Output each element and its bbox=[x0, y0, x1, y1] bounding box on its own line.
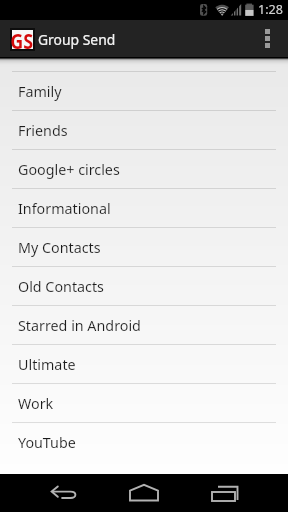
staticText: Informational bbox=[18, 199, 111, 218]
staticText: GS bbox=[10, 25, 34, 54]
button[interactable]: Google+ circles bbox=[0, 150, 288, 188]
staticText: Group Send bbox=[38, 30, 116, 49]
button[interactable]: YouTube bbox=[0, 423, 288, 461]
staticText: Starred in Android bbox=[18, 316, 141, 335]
button[interactable]: Friends bbox=[0, 111, 288, 149]
staticText: 1:28 bbox=[258, 1, 283, 18]
button[interactable]: More options bbox=[246, 20, 288, 57]
button[interactable]: My Contacts bbox=[0, 228, 288, 266]
staticText: Old Contacts bbox=[18, 277, 104, 296]
button[interactable]: Back bbox=[0, 474, 96, 512]
button[interactable]: Informational bbox=[0, 189, 288, 227]
staticText: Family bbox=[18, 82, 62, 101]
button[interactable]: Recent apps bbox=[192, 474, 288, 512]
staticText: My Contacts bbox=[18, 238, 101, 257]
button[interactable]: Work bbox=[0, 384, 288, 422]
staticText: Ultimate bbox=[18, 355, 76, 374]
button[interactable]: Family bbox=[0, 72, 288, 110]
button[interactable]: Old Contacts bbox=[0, 267, 288, 305]
button[interactable]: Ultimate bbox=[0, 345, 288, 383]
staticText: Google+ circles bbox=[18, 160, 120, 179]
staticText: Work bbox=[18, 394, 54, 413]
button[interactable]: Home bbox=[96, 474, 192, 512]
staticText: YouTube bbox=[18, 433, 76, 452]
button[interactable]: Starred in Android bbox=[0, 306, 288, 344]
staticText: Friends bbox=[18, 121, 68, 140]
